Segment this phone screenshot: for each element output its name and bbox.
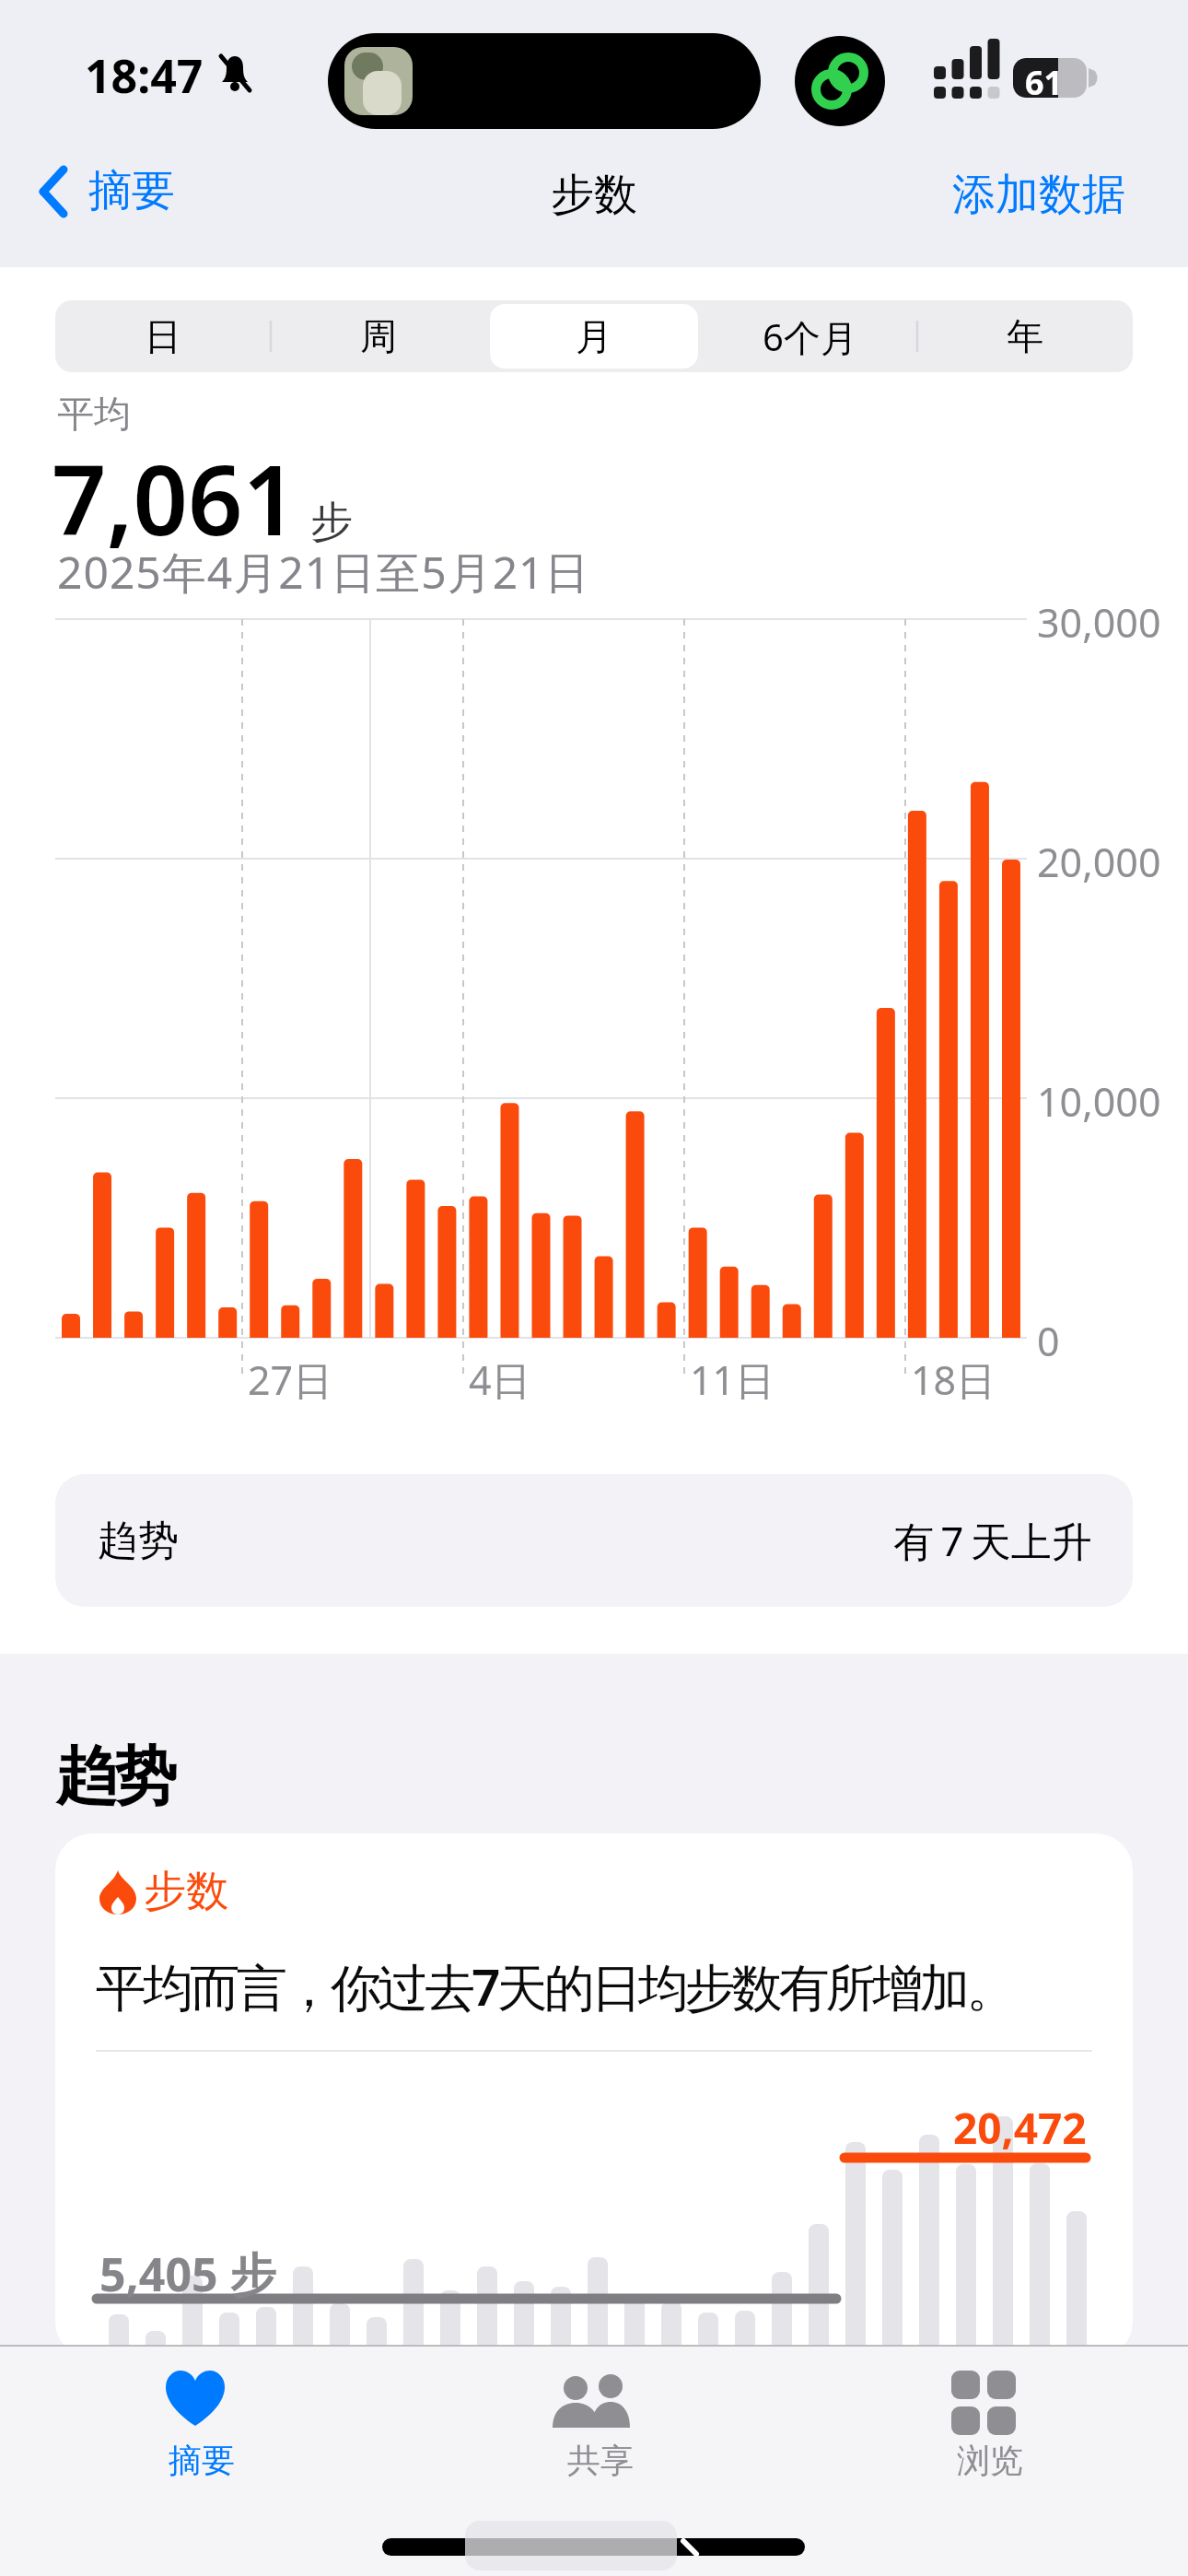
button[interactable]: 周 xyxy=(271,300,486,372)
button[interactable]: 添加数据 xyxy=(952,168,1125,222)
staticText: 5,405 步 xyxy=(99,2242,276,2305)
staticText: 浏览 xyxy=(957,2440,1023,2481)
staticText: 有 7 天上升 xyxy=(893,1513,1092,1568)
button[interactable]: 年 xyxy=(917,300,1133,372)
button[interactable]: 6个月 xyxy=(702,300,917,372)
staticText: 11日 xyxy=(690,1352,775,1407)
staticText: 7,061 xyxy=(52,433,297,564)
staticText: 平均 xyxy=(57,391,131,437)
staticText: 0 xyxy=(1037,1314,1060,1368)
button[interactable]: 日 xyxy=(55,300,271,372)
staticText: 步 xyxy=(310,496,353,549)
staticText: 步数 xyxy=(0,168,1188,222)
staticText: 6个月 xyxy=(763,311,857,362)
staticText: 添加数据 xyxy=(952,168,1125,222)
staticText: 年 xyxy=(1007,313,1043,359)
staticText: 27日 xyxy=(248,1352,333,1407)
button[interactable]: 摘要 xyxy=(122,2352,269,2527)
staticText: 步数 xyxy=(144,1865,228,1918)
staticText: 2025年4月21日至5月21日 xyxy=(57,542,590,603)
staticText: 趋势 xyxy=(57,1738,175,1817)
button[interactable]: 趋势 xyxy=(55,1474,1133,1607)
staticText: 趋势 xyxy=(98,1516,179,1566)
staticText: 18:47 xyxy=(85,44,204,107)
staticText: 日 xyxy=(145,313,181,359)
staticText: 30,000 xyxy=(1037,595,1161,650)
staticText: 周 xyxy=(360,313,397,359)
staticText: 摘要 xyxy=(169,2440,235,2481)
button[interactable]: 浏览 xyxy=(910,2352,1057,2527)
staticText: 摘要 xyxy=(88,164,175,218)
staticText: 平均而言，你过去7天的日均步数有所增加。 xyxy=(96,1951,1014,2020)
staticText: 月 xyxy=(576,313,612,359)
staticText: 4日 xyxy=(469,1352,531,1407)
staticText: 61 xyxy=(1025,60,1064,98)
staticText: 20,472 xyxy=(953,2099,1087,2157)
button[interactable]: 共享 xyxy=(520,2352,668,2527)
button[interactable]: 月 xyxy=(486,300,702,372)
button[interactable]: 步数 xyxy=(55,1833,1133,2359)
button[interactable]: 摘要 xyxy=(37,164,175,218)
staticText: 10,000 xyxy=(1037,1074,1161,1129)
staticText: 共享 xyxy=(567,2440,634,2481)
staticText: 20,000 xyxy=(1037,835,1161,889)
staticText: 18日 xyxy=(911,1352,996,1407)
